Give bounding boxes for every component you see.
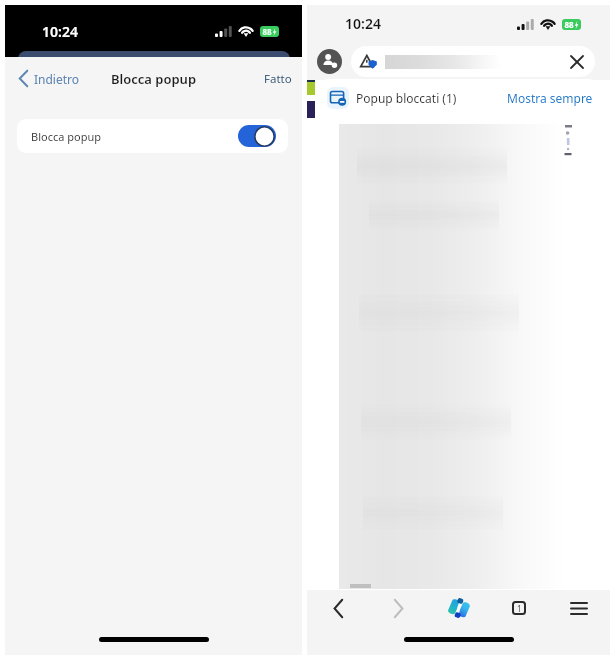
staticText: 1 — [517, 603, 522, 614]
button[interactable]: Chiudi — [567, 52, 587, 72]
button[interactable]: Menu — [562, 591, 596, 625]
button[interactable]: Popup bloccati (1) — [319, 79, 598, 117]
button[interactable]: Avanti — [381, 591, 415, 625]
button[interactable]: Indietro — [19, 70, 80, 87]
button[interactable]: Mostra sempre — [507, 90, 593, 106]
staticText: Blocca popup — [31, 129, 101, 144]
staticText: 88 — [564, 19, 574, 30]
button[interactable]: Indietro — [321, 591, 355, 625]
button[interactable]: Schede aperte: 1 — [502, 591, 536, 625]
button[interactable]: Profilo — [317, 49, 342, 74]
button[interactable]: Copilot — [442, 591, 476, 625]
button[interactable]: Blocca popup — [17, 119, 288, 153]
staticText: Blocca popup — [111, 70, 197, 88]
button[interactable]: Fatto — [264, 71, 292, 87]
staticText: 10:24 — [42, 22, 78, 41]
button[interactable]: Chiudi — [351, 46, 595, 77]
button[interactable]: Blocca popup attivato — [238, 125, 276, 147]
staticText: 10:24 — [345, 14, 381, 33]
staticText: Indietro — [34, 71, 80, 87]
staticText: Popup bloccati (1) — [356, 90, 457, 106]
staticText: 88 — [262, 26, 272, 37]
